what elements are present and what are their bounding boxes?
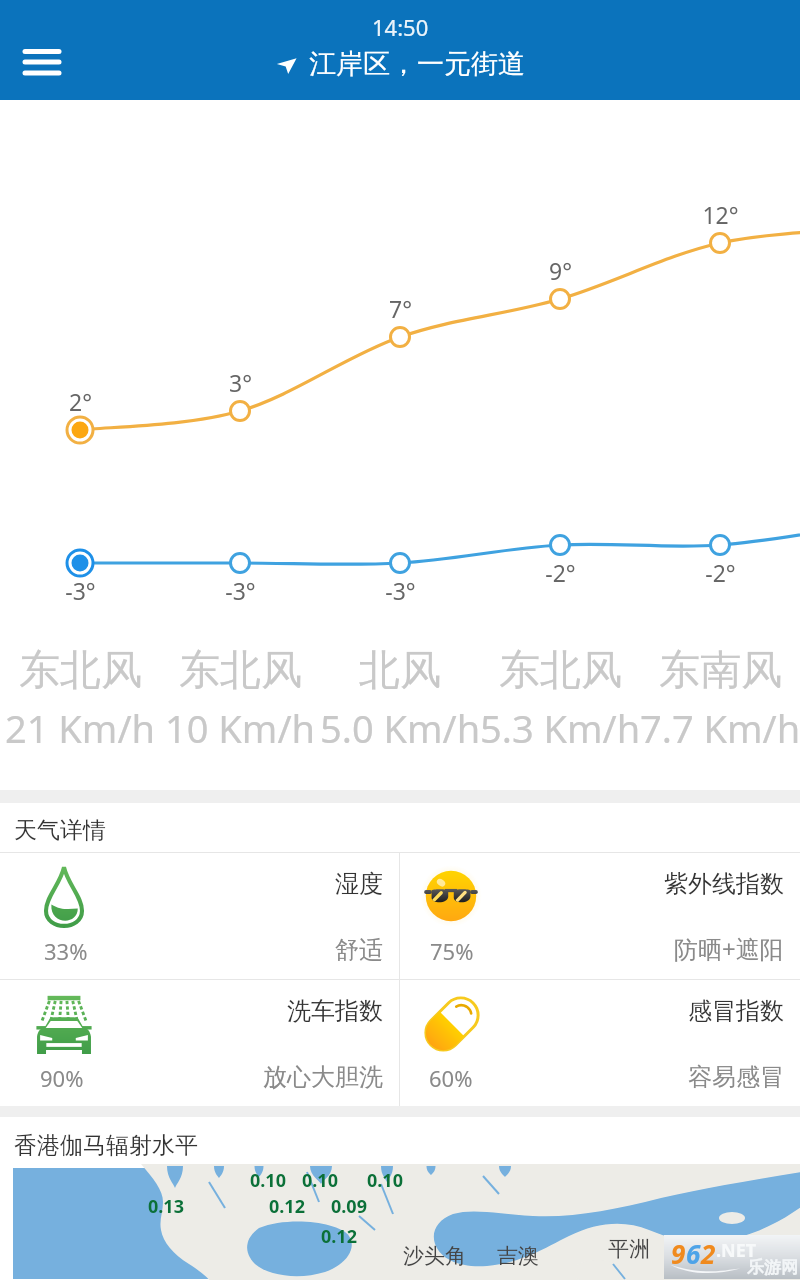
button[interactable]: 75% (400, 853, 800, 979)
staticText: 东北风 (19, 645, 142, 697)
staticText: 0.12 (321, 1224, 357, 1249)
staticText: 江岸区，一元街道 (309, 47, 525, 81)
staticText: 洗车指数 (287, 996, 383, 1026)
staticText: 2 (701, 1236, 716, 1271)
button[interactable]: 33% (0, 853, 399, 979)
staticText: 沙头角 (403, 1243, 466, 1269)
staticText: 放心大胆洗 (263, 1062, 383, 1092)
staticText: 0.10 (250, 1168, 286, 1193)
staticText: 0.09 (331, 1194, 367, 1219)
staticText: 7° (389, 293, 412, 324)
staticText: 北风 (359, 645, 441, 697)
staticText: 吉澳 (497, 1243, 539, 1269)
staticText: .NET (716, 1238, 757, 1263)
staticText: 东北风 (179, 645, 302, 697)
staticText: -2° (705, 557, 736, 588)
staticText: 0.10 (302, 1168, 338, 1193)
staticText: 2° (69, 386, 92, 417)
staticText: -3° (385, 575, 416, 606)
staticText: 0.13 (148, 1194, 184, 1219)
staticText: 9 (671, 1236, 686, 1271)
staticText: 防晒+遮阳 (674, 932, 784, 965)
staticText: 0.10 (367, 1168, 403, 1193)
staticText: 90% (40, 1063, 84, 1093)
staticText: 60% (429, 1063, 473, 1093)
staticText: 感冒指数 (688, 996, 784, 1026)
staticText: 6 (686, 1236, 701, 1271)
staticText: -3° (65, 575, 96, 606)
staticText: -3° (225, 575, 256, 606)
staticText: 紫外线指数 (664, 869, 784, 899)
staticText: 香港伽马辐射水平 (14, 1131, 198, 1160)
button[interactable]: Menu (10, 32, 74, 92)
button[interactable]: 60% (400, 980, 800, 1106)
staticText: 5.0 Km/h (320, 702, 480, 754)
staticText: 33% (44, 936, 88, 966)
staticText: 9° (549, 255, 572, 286)
staticText: 5.3 Km/h (480, 702, 640, 754)
staticText: 天气详情 (14, 816, 106, 845)
staticText: 平洲 (608, 1236, 650, 1262)
staticText: 10 Km/h (165, 702, 316, 754)
staticText: 3° (229, 367, 252, 398)
staticText: 东北风 (499, 645, 622, 697)
staticText: 21 Km/h (5, 702, 156, 754)
staticText: 7.7 Km/h (640, 702, 800, 754)
staticText: 14:50 (372, 12, 429, 42)
staticText: 湿度 (335, 869, 383, 899)
staticText: 75% (430, 936, 474, 966)
staticText: 12° (702, 199, 739, 230)
staticText: -2° (545, 557, 576, 588)
staticText: 0.12 (269, 1194, 305, 1219)
staticText: 乐游网 (747, 1257, 798, 1278)
button[interactable]: 90% (0, 980, 399, 1106)
staticText: 容易感冒 (688, 1062, 784, 1092)
staticText: 东南风 (659, 645, 782, 697)
staticText: 舒适 (335, 935, 383, 965)
